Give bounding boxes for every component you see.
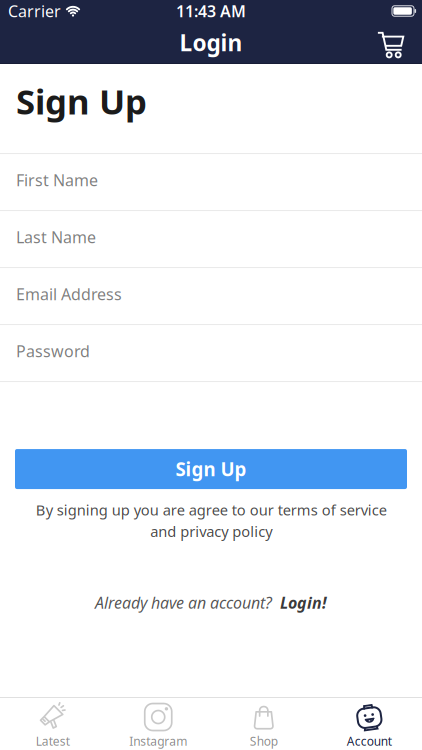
staticText: Login: [179, 27, 242, 57]
button[interactable]: Last Name: [0, 210, 422, 267]
staticText: Password: [16, 340, 90, 362]
staticText: Shop: [250, 733, 278, 749]
button[interactable]: First Name: [0, 153, 422, 210]
staticText: Instagram: [129, 733, 187, 749]
staticText: Carrier: [8, 0, 61, 22]
button[interactable]: Shop: [211, 697, 316, 750]
button[interactable]: Account: [316, 697, 422, 750]
staticText: Email Address: [16, 283, 122, 305]
staticText: 11:43 AM: [176, 0, 246, 22]
staticText: By signing up you are agree to our terms…: [35, 500, 386, 541]
button[interactable]: Latest: [0, 697, 105, 750]
staticText: Last Name: [16, 226, 96, 248]
staticText: First Name: [16, 169, 98, 191]
staticText: Account: [347, 733, 392, 749]
staticText: Already have an account?: [95, 592, 280, 613]
button[interactable]: Instagram: [105, 697, 211, 750]
button[interactable]: Email Address: [0, 267, 422, 324]
button[interactable]: Cart: [377, 26, 422, 58]
button[interactable]: Password: [0, 324, 422, 381]
staticText: Sign Up: [16, 78, 147, 124]
staticText: Sign Up: [175, 457, 246, 481]
button[interactable]: Login!: [280, 592, 327, 613]
staticText: Latest: [36, 733, 70, 749]
staticText: Login!: [280, 592, 327, 613]
button[interactable]: Sign Up: [15, 449, 407, 489]
